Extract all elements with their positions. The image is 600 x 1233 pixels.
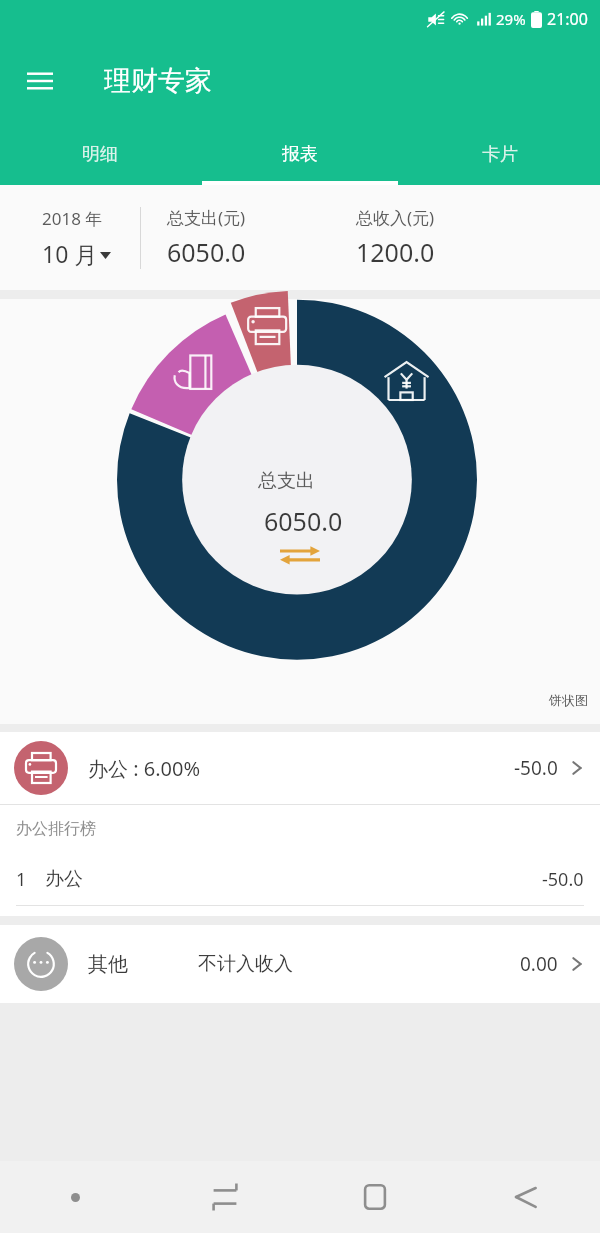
staticText: 卡片 <box>482 143 518 166</box>
staticText: 1200.0 <box>356 235 435 269</box>
button[interactable]: 1 <box>0 853 600 905</box>
staticText: 不计入收入 <box>198 952 293 976</box>
staticText: 办公排行榜 <box>16 819 96 839</box>
staticText: -50.0 <box>514 755 558 781</box>
staticText: 1 <box>16 867 27 892</box>
staticText: 办公 : 6.00% <box>88 755 201 782</box>
staticText: 总支出(元) <box>167 206 246 229</box>
staticText: 2018 年 <box>42 207 103 230</box>
button[interactable]: Switch <box>150 1161 300 1233</box>
staticText: 理财专家 <box>104 64 212 98</box>
staticText: 29% <box>496 9 526 29</box>
staticText: 办公 <box>45 867 83 891</box>
staticText: 饼状图 <box>549 692 588 708</box>
button[interactable]: 办公 : 6.00% <box>0 732 600 804</box>
button[interactable]: Recents <box>300 1161 450 1233</box>
staticText: 6050.0 <box>264 504 343 538</box>
button[interactable]: 卡片 <box>400 123 600 185</box>
staticText: 10 月 <box>42 238 98 269</box>
button[interactable]: Back <box>450 1161 600 1233</box>
staticText: 明细 <box>82 143 118 166</box>
staticText: 其他 <box>88 952 128 977</box>
staticText: 6050.0 <box>167 235 246 269</box>
staticText: 总收入(元) <box>356 206 435 229</box>
staticText: 21:00 <box>547 8 588 30</box>
button[interactable]: Menu <box>16 57 64 105</box>
button[interactable]: 报表 <box>200 123 400 185</box>
button[interactable]: 明细 <box>0 123 200 185</box>
staticText: 0.00 <box>520 951 558 977</box>
button[interactable]: 其他 <box>0 925 600 1003</box>
button[interactable]: Assistant <box>0 1161 150 1233</box>
staticText: -50.0 <box>542 867 584 892</box>
staticText: 报表 <box>282 143 318 166</box>
staticText: 总支出 <box>258 469 315 493</box>
